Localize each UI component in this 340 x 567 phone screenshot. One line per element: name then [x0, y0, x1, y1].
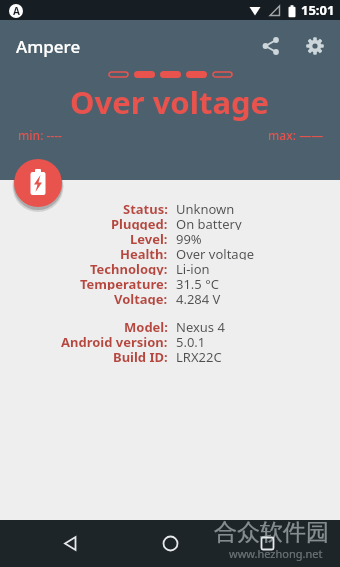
staticText: Over voltage: [176, 245, 254, 260]
staticText: Unknown: [176, 200, 235, 215]
button[interactable]: [46, 520, 94, 567]
staticText: A: [13, 4, 20, 18]
staticText: 99%: [176, 230, 202, 245]
staticText: 4.284 V: [176, 290, 221, 305]
staticText: 5.0.1: [176, 333, 206, 348]
button[interactable]: [256, 31, 286, 61]
staticText: 合众软件园: [214, 518, 329, 547]
button[interactable]: [300, 31, 330, 61]
staticText: Nexus 4: [176, 318, 225, 333]
staticText: www.hezhong.net: [229, 546, 323, 561]
staticText: Health:: [120, 245, 168, 260]
staticText: Plugged:: [111, 215, 168, 230]
staticText: Build ID:: [113, 348, 168, 363]
button[interactable]: [243, 520, 291, 567]
staticText: Voltage:: [114, 290, 168, 305]
staticText: Level:: [130, 230, 168, 245]
button[interactable]: [146, 520, 194, 567]
staticText: Li-ion: [176, 260, 210, 275]
staticText: Model:: [124, 318, 168, 333]
staticText: Ampere: [16, 35, 81, 58]
staticText: min: ----: [18, 127, 62, 143]
staticText: Temperature:: [80, 275, 168, 290]
staticText: On battery: [176, 215, 242, 230]
staticText: 31.5 °C: [176, 275, 219, 290]
button[interactable]: [14, 159, 62, 207]
staticText: LRX22C: [176, 348, 222, 363]
staticText: 15:01: [301, 1, 335, 19]
staticText: Over voltage: [70, 81, 270, 123]
staticText: Technology:: [90, 260, 168, 275]
staticText: max: ——: [268, 127, 324, 143]
staticText: Status:: [123, 200, 168, 215]
staticText: Android version:: [61, 333, 168, 348]
